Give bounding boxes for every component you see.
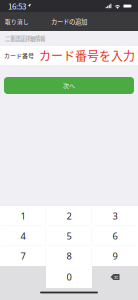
button[interactable]: 1 (0, 206, 46, 226)
button[interactable]: 2 (46, 206, 92, 226)
staticText: カードの追加 (51, 17, 87, 26)
button[interactable]: 8 (46, 246, 92, 266)
button[interactable]: 削除 (92, 266, 138, 288)
staticText: 7 (20, 250, 25, 262)
button[interactable]: 9 (92, 246, 138, 266)
staticText: 16:53 (8, 0, 26, 12)
button[interactable]: 3 (92, 206, 138, 226)
staticText: 取り消し (5, 17, 29, 25)
staticText: 次へ (63, 81, 75, 90)
staticText: 二重認証詳細情報 (5, 35, 45, 42)
staticText: 1 (20, 210, 25, 222)
button[interactable]: 6 (92, 226, 138, 246)
staticText: 8 (66, 250, 71, 262)
staticText: カード番号を入力 (39, 47, 135, 64)
staticText: カード番号 (4, 51, 34, 60)
staticText: 5 (66, 230, 71, 242)
staticText: 0 (66, 271, 71, 283)
button[interactable]: 取り消し (0, 12, 33, 31)
staticText: 4 (20, 230, 25, 242)
staticText: 3 (112, 210, 117, 222)
staticText: 2 (66, 210, 71, 222)
button[interactable]: 4 (0, 226, 46, 246)
button[interactable]: 5 (46, 226, 92, 246)
staticText: 9 (112, 250, 117, 262)
button[interactable]: 次へ (4, 77, 134, 94)
staticText: 6 (112, 230, 117, 242)
button[interactable]: 7 (0, 246, 46, 266)
button[interactable]: 0 (46, 266, 92, 288)
